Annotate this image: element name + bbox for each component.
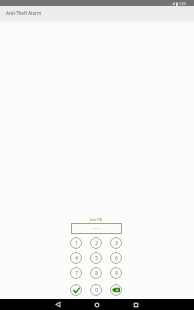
button[interactable]: Recents [130, 299, 142, 310]
button[interactable]: 9 [110, 267, 122, 279]
button[interactable]: Back [52, 299, 64, 310]
staticText: 8 [95, 270, 98, 276]
staticText: 1:23 [179, 1, 186, 6]
button[interactable]: 0 [90, 284, 102, 296]
staticText: Anti-Theft Alarm [6, 10, 42, 16]
button[interactable]: 7 [70, 267, 82, 279]
staticText: 2 [95, 240, 98, 246]
staticText: 7 [75, 270, 78, 276]
staticText: Enter PIN [90, 218, 102, 222]
staticText: 3 [115, 240, 118, 246]
button[interactable]: Confirm [70, 284, 82, 296]
staticText: 4 [75, 255, 78, 261]
button[interactable]: 3 [110, 237, 122, 249]
staticText: 9 [115, 270, 118, 276]
button[interactable]: 2 [90, 237, 102, 249]
button[interactable]: 8 [90, 267, 102, 279]
button[interactable]: 5 [90, 252, 102, 264]
button[interactable]: Home [91, 299, 103, 310]
staticText: 0 [95, 287, 98, 293]
staticText: 6 [115, 255, 118, 261]
button[interactable]: Delete [110, 284, 122, 296]
button[interactable]: 6 [110, 252, 122, 264]
staticText: 5 [95, 255, 98, 261]
button[interactable]: 1 [70, 237, 82, 249]
button[interactable]: 4 [70, 252, 82, 264]
staticText: 1 [75, 240, 78, 246]
